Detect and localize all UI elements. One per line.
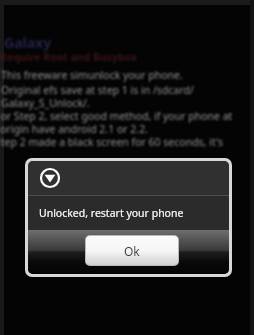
staticText: For Step 2, select good method, if your … [0,109,233,123]
staticText: Galaxy [4,33,52,52]
staticText: Original efs save at step 1 is in /sdcar… [1,83,194,97]
staticText: Require Root and Busybox [0,50,138,64]
button[interactable]: Ok [86,236,178,265]
other: Notification icon [38,166,62,190]
staticText: Step 2 made a black screen for 60 second… [0,135,223,149]
staticText: Unlocked, restart your phone [39,206,184,220]
staticText: Ok [124,243,140,259]
staticText: origin have android 2.1 or 2.2. [0,122,148,136]
staticText: This freeware simunlock your phone. [1,68,183,82]
staticText: Galaxy_S_Unlock/. [1,96,90,110]
